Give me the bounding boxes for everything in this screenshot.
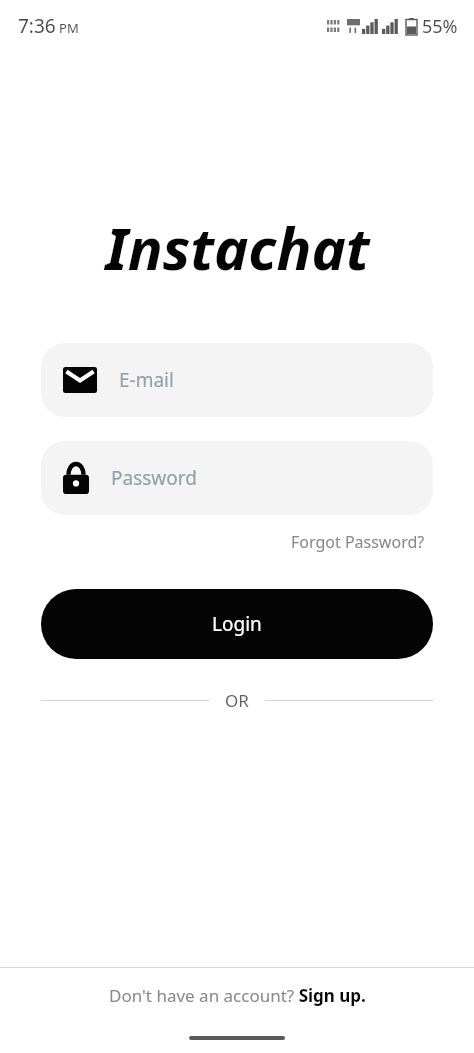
button[interactable]: Don't have an account? Sign up. [103, 980, 372, 1011]
staticText: OR [225, 689, 249, 712]
button[interactable]: Login [41, 589, 433, 659]
staticText: E-mail [119, 367, 174, 393]
button[interactable]: Forgot Password? [287, 527, 429, 557]
staticText: 7:36 PM [18, 13, 79, 39]
staticText: Forgot Password? [291, 531, 425, 553]
button[interactable]: E-mail [41, 343, 433, 417]
staticText: Instachat [105, 208, 370, 287]
staticText: Login [212, 611, 262, 637]
staticText: 55% [422, 14, 458, 39]
staticText: Password [111, 465, 197, 491]
button[interactable]: Password [41, 441, 433, 515]
staticText: Don't have an account? Sign up. [109, 984, 366, 1007]
